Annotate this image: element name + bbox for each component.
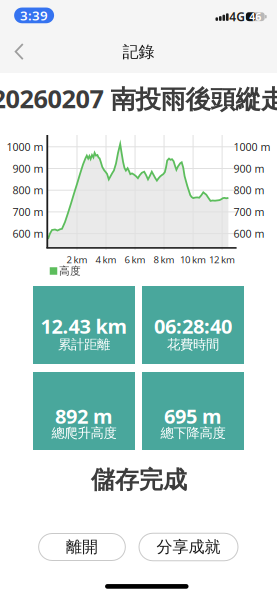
staticText: 900 m [12,161,43,176]
staticText: 700 m [12,205,43,219]
staticText: 1000 m [6,140,43,154]
staticText: 儲存完成 [91,465,187,495]
staticText: 12 km [209,253,235,266]
staticText: 4G [229,9,245,25]
staticText: 900 m [233,161,264,176]
staticText: 10 km [180,253,206,266]
staticText: 1000 m [233,140,270,154]
staticText: 記錄 [122,42,154,62]
staticText: 06:28:40 [154,313,232,339]
staticText: 8 km [154,253,175,266]
staticText: 花費時間 [167,336,219,353]
staticText: 總下降高度 [160,425,225,441]
staticText: 700 m [233,205,264,219]
button[interactable]: 離開 [39,533,125,560]
staticText: 6 km [124,253,145,266]
staticText: 累計距離 [58,336,110,353]
staticText: 4 km [95,253,116,266]
staticText: 分享成就 [156,537,220,557]
staticText: 600 m [12,226,43,241]
staticText: 800 m [233,183,264,197]
staticText: 695 m [164,403,222,429]
staticText: 高度 [59,264,81,277]
staticText: 總爬升高度 [51,425,116,441]
staticText: 46 [249,10,261,24]
button[interactable]: Back [9,40,29,64]
staticText: 12.43 km [40,313,127,339]
staticText: 離開 [66,537,98,557]
staticText: 2 km [66,253,87,266]
button[interactable]: 分享成就 [139,533,238,561]
staticText: 20260207 南投雨後頭縱走 [0,82,277,115]
staticText: 892 m [55,403,113,429]
staticText: 600 m [233,226,264,241]
staticText: 3:39 [20,6,48,24]
staticText: 800 m [12,183,43,197]
